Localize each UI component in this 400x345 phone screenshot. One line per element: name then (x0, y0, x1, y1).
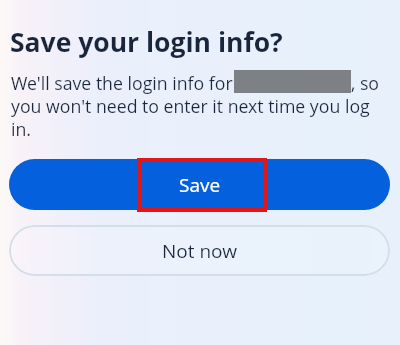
button[interactable]: Not now (9, 225, 390, 276)
staticText: Not now (162, 238, 237, 264)
staticText: Save your login info? (10, 24, 283, 60)
staticText: We'll save the login info for (11, 71, 233, 95)
button[interactable]: Save (9, 159, 390, 210)
staticText: in. (11, 117, 32, 141)
staticText: you won't need to enter it next time you… (11, 94, 370, 118)
staticText: , so (351, 71, 380, 95)
staticText: Save (179, 172, 221, 198)
